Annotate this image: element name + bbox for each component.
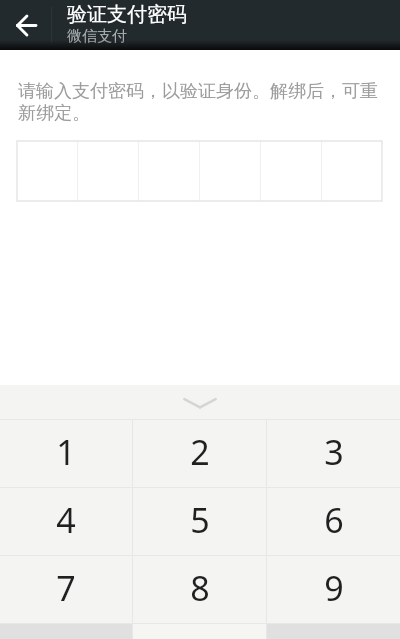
button[interactable]: 2 [133, 420, 266, 487]
staticText: 1 [56, 429, 76, 475]
staticText: 7 [56, 565, 76, 611]
button[interactable]: Password digit 4 [199, 141, 260, 201]
staticText: 3 [324, 429, 344, 475]
button[interactable]: 6 [267, 488, 400, 555]
button[interactable]: 1 [0, 420, 132, 487]
staticText: 9 [324, 565, 344, 611]
staticText: 4 [56, 497, 76, 543]
staticText: 8 [190, 565, 210, 611]
button[interactable]: Password digit 1 [17, 141, 77, 201]
button[interactable]: 9 [267, 556, 400, 623]
staticText: 请输入支付密码，以验证身份。解绑后，可重新绑定。 [18, 80, 386, 125]
staticText: 6 [324, 497, 344, 543]
button[interactable]: Password digit 2 [77, 141, 138, 201]
button[interactable]: 4 [0, 488, 132, 555]
staticText: 5 [190, 497, 210, 543]
button[interactable]: Password digit 6 [321, 141, 382, 201]
staticText: 微信支付 [67, 27, 127, 46]
button[interactable]: Password digit 5 [260, 141, 321, 201]
staticText: 2 [190, 429, 210, 475]
staticText: 验证支付密码 [67, 2, 187, 27]
button[interactable]: Password digit 3 [138, 141, 199, 201]
button[interactable]: 5 [133, 488, 266, 555]
button[interactable]: 8 [133, 556, 266, 623]
button[interactable]: Back [0, 0, 51, 50]
button[interactable]: 7 [0, 556, 132, 623]
button[interactable]: 3 [267, 420, 400, 487]
button[interactable]: Hide keyboard [169, 385, 231, 419]
